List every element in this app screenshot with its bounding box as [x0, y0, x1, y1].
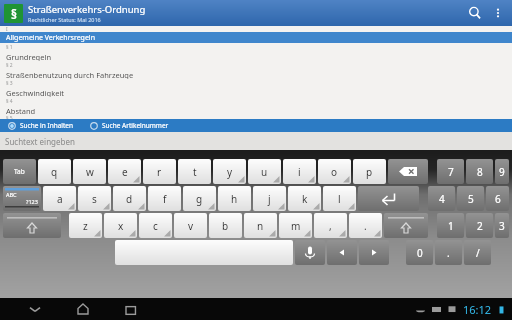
button[interactable]: v: [174, 213, 207, 238]
button[interactable]: § 3: [0, 79, 512, 97]
staticText: .: [447, 246, 450, 260]
staticText: 0: [417, 246, 423, 260]
staticText: p: [366, 165, 373, 179]
button[interactable]: Suche in Inhalten: [8, 121, 74, 130]
button[interactable]: m: [279, 213, 312, 238]
button[interactable]: o: [318, 159, 351, 184]
staticText: l: [338, 192, 341, 206]
staticText: Tab: [14, 167, 25, 176]
staticText: n: [257, 219, 264, 233]
staticText: ABC: [6, 191, 17, 198]
button[interactable]: s: [78, 186, 111, 211]
staticText: 8: [477, 165, 483, 179]
button[interactable]: w: [73, 159, 106, 184]
button[interactable]: j: [253, 186, 286, 211]
button[interactable]: 5: [457, 186, 484, 211]
button[interactable]: k: [288, 186, 321, 211]
staticText: Grundregeln: [6, 52, 52, 61]
button[interactable]: App icon: [4, 4, 23, 23]
button[interactable]: 1: [437, 213, 464, 238]
button[interactable]: Enter: [358, 186, 419, 211]
button[interactable]: Suche Artikelnummer: [90, 121, 169, 130]
staticText: 2: [477, 219, 483, 233]
button[interactable]: ,: [314, 213, 347, 238]
staticText: t: [193, 165, 197, 179]
staticText: v: [188, 219, 194, 233]
staticText: Suchtext eingeben: [5, 136, 75, 147]
button[interactable]: p: [353, 159, 386, 184]
staticText: c: [153, 219, 158, 233]
staticText: 16:12: [463, 302, 492, 317]
button[interactable]: Switch to symbols: [3, 186, 41, 211]
button[interactable]: f: [148, 186, 181, 211]
staticText: § 5: [6, 115, 13, 119]
button[interactable]: 0: [406, 240, 433, 265]
button[interactable]: e: [108, 159, 141, 184]
staticText: ?123: [26, 198, 38, 205]
staticText: 5: [468, 192, 474, 206]
button[interactable]: y: [213, 159, 246, 184]
button[interactable]: /: [464, 240, 491, 265]
staticText: Rechtlicher Status: Mai 2016: [28, 16, 101, 23]
button[interactable]: q: [38, 159, 71, 184]
button[interactable]: x: [104, 213, 137, 238]
button[interactable]: .: [435, 240, 462, 265]
staticText: g: [196, 192, 203, 206]
button[interactable]: z: [69, 213, 102, 238]
button[interactable]: n: [244, 213, 277, 238]
staticText: § 1: [6, 44, 13, 51]
button[interactable]: a: [43, 186, 76, 211]
staticText: Straßenbenutzung durch Fahrzeuge: [6, 70, 134, 79]
button[interactable]: .: [349, 213, 382, 238]
button[interactable]: § 2: [0, 61, 512, 79]
button[interactable]: § 4: [0, 97, 512, 115]
staticText: h: [231, 192, 238, 206]
button[interactable]: Right: [359, 240, 389, 265]
button[interactable]: u: [248, 159, 281, 184]
button[interactable]: Left: [327, 240, 357, 265]
staticText: Allgemeine Verkehrsregeln: [6, 33, 95, 43]
button[interactable]: b: [209, 213, 242, 238]
button[interactable]: Shift: [384, 213, 428, 238]
staticText: y: [227, 165, 233, 179]
button[interactable]: 8: [466, 159, 493, 184]
button[interactable]: h: [218, 186, 251, 211]
button[interactable]: 4: [428, 186, 455, 211]
button[interactable]: l: [323, 186, 356, 211]
button[interactable]: c: [139, 213, 172, 238]
button[interactable]: r: [143, 159, 176, 184]
button[interactable]: Recent apps: [118, 298, 144, 320]
button[interactable]: Back: [22, 298, 48, 320]
button[interactable]: § 1: [0, 43, 512, 61]
button[interactable]: 9: [495, 159, 509, 184]
staticText: 4: [439, 192, 445, 206]
button[interactable]: 3: [495, 213, 509, 238]
staticText: § 3: [6, 80, 13, 87]
button[interactable]: 7: [437, 159, 464, 184]
staticText: 3: [499, 219, 505, 233]
button[interactable]: Suchtext eingeben: [0, 132, 512, 150]
staticText: o: [331, 165, 338, 179]
staticText: /: [476, 246, 480, 260]
button[interactable]: Space: [115, 240, 293, 265]
button[interactable]: d: [113, 186, 146, 211]
button[interactable]: i: [283, 159, 316, 184]
button[interactable]: Shift: [3, 213, 61, 238]
button[interactable]: 6: [486, 186, 509, 211]
button[interactable]: Search: [462, 0, 488, 26]
button[interactable]: More options: [488, 3, 508, 23]
button[interactable]: g: [183, 186, 216, 211]
button[interactable]: 2: [466, 213, 493, 238]
staticText: x: [118, 219, 124, 233]
staticText: § 2: [6, 62, 13, 69]
button[interactable]: Allgemeine Verkehrsregeln: [0, 32, 512, 43]
button[interactable]: Tab: [3, 159, 36, 184]
button[interactable]: Voice input: [295, 240, 325, 265]
staticText: b: [222, 219, 229, 233]
button[interactable]: Home: [70, 298, 96, 320]
button[interactable]: Backspace: [388, 159, 428, 184]
staticText: Geschwindigkeit: [6, 88, 65, 97]
staticText: w: [86, 165, 94, 179]
button[interactable]: t: [178, 159, 211, 184]
staticText: 6: [495, 192, 501, 206]
